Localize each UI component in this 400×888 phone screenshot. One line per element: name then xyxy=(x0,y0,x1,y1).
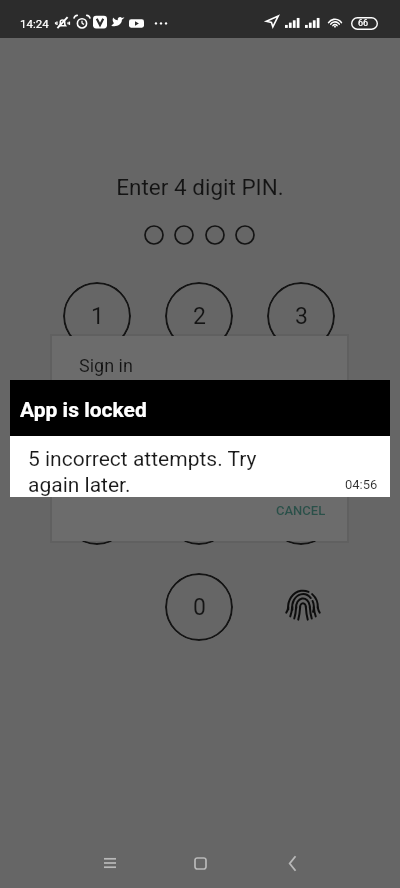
button[interactable]: Recent apps xyxy=(85,838,135,888)
staticText: 1 xyxy=(91,303,104,330)
staticText: App is locked xyxy=(20,398,147,423)
button[interactable]: Back xyxy=(267,838,317,888)
staticText: 9 xyxy=(295,498,308,525)
button[interactable]: CANCEL xyxy=(267,496,335,525)
staticText: 4 xyxy=(91,401,104,428)
staticText: 5 incorrect attempts. Try again later. xyxy=(28,447,257,497)
button[interactable]: 7 xyxy=(63,477,131,545)
button[interactable]: 6 xyxy=(267,380,335,448)
staticText: Sign in xyxy=(79,355,133,376)
staticText: 3 xyxy=(295,303,308,330)
staticText: CANCEL xyxy=(276,503,326,518)
button[interactable]: 2 xyxy=(165,282,233,350)
button[interactable]: Home xyxy=(175,838,225,888)
button[interactable]: 5 xyxy=(165,380,233,448)
button[interactable]: 4 xyxy=(63,380,131,448)
staticText: Enter 4 digit PIN. xyxy=(0,174,400,200)
staticText: 04:56 xyxy=(345,477,378,492)
button[interactable]: 3 xyxy=(267,282,335,350)
button[interactable]: 1 xyxy=(63,282,131,350)
staticText: 2 xyxy=(193,303,206,330)
button[interactable]: 9 xyxy=(267,477,335,545)
staticText: 0 xyxy=(193,594,206,621)
button[interactable]: 0 xyxy=(165,573,233,641)
button[interactable]: Unlock with fingerprint xyxy=(284,588,322,626)
button[interactable]: 8 xyxy=(165,477,233,545)
staticText: 14:24 xyxy=(20,17,49,30)
staticText: 66 xyxy=(358,18,369,29)
button[interactable]: App is locked xyxy=(10,380,390,436)
